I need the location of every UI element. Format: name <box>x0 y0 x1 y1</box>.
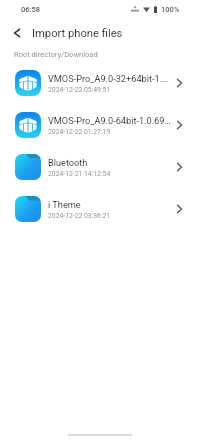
staticText: Import phone files <box>32 27 123 40</box>
staticText: VMOS-Pro_A9.0-64bit-1.0.69_... <box>48 115 173 126</box>
staticText: 06:58 <box>21 5 41 14</box>
button[interactable]: VMOS-Pro_A9.0-64bit-1.0.69_... <box>0 104 200 146</box>
staticText: 100% <box>161 5 180 14</box>
staticText: i Theme <box>48 199 81 210</box>
staticText: Root directory/Download <box>14 50 98 59</box>
staticText: 2024-12-22 01:27:19 <box>48 128 111 136</box>
button[interactable]: VMOS-Pro_A9.0-32+64bit-1.0... <box>0 62 200 104</box>
staticText: Bluetooth <box>48 157 88 168</box>
button[interactable]: Back <box>3 19 30 46</box>
staticText: 2024-12-21 14:12:54 <box>48 170 111 178</box>
staticText: 2024-12-22 05:49:51 <box>48 86 111 94</box>
staticText: VMOS-Pro_A9.0-32+64bit-1.0... <box>48 73 173 84</box>
button[interactable]: i Theme <box>0 188 200 230</box>
button[interactable]: Bluetooth <box>0 146 200 188</box>
staticText: 2024-12-22 03:36:21 <box>48 212 111 220</box>
